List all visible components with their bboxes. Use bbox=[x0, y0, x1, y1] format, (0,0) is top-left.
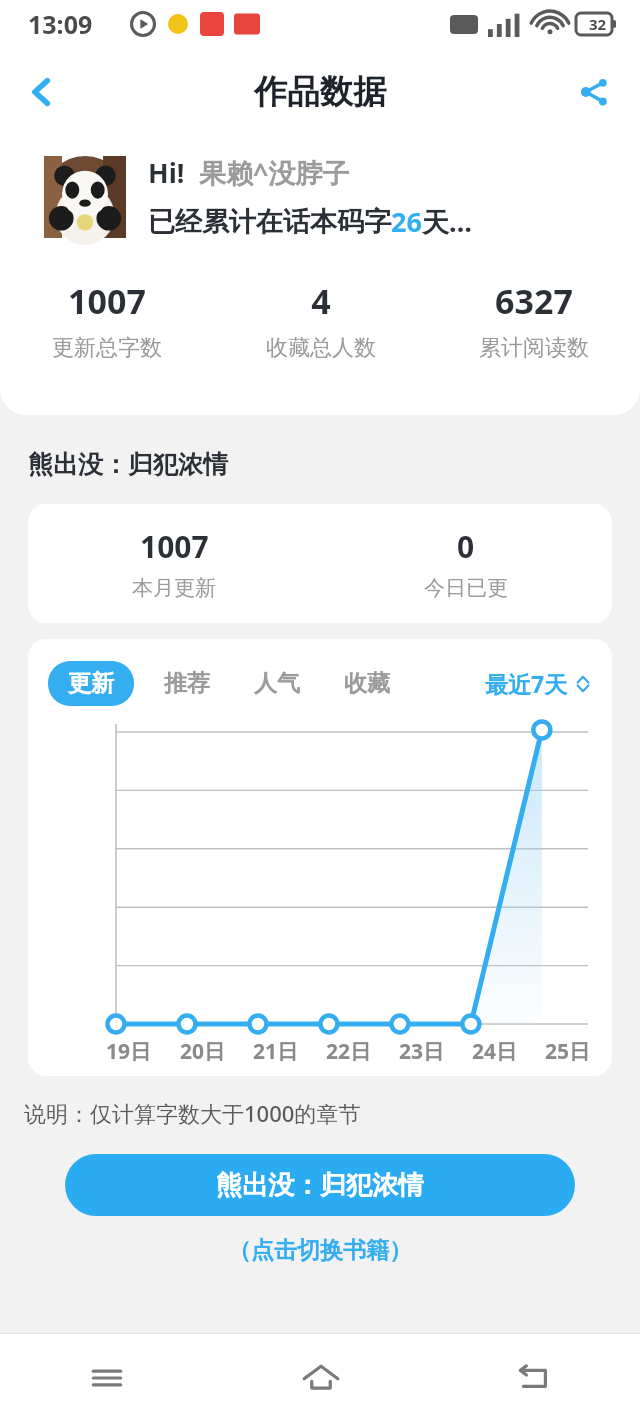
button[interactable]: Back bbox=[427, 1334, 640, 1422]
staticText: 25日 bbox=[545, 1037, 591, 1066]
staticText: 累计阅读数 bbox=[479, 334, 589, 362]
staticText: 1007 bbox=[140, 526, 209, 567]
staticText: 熊出没：归犯浓情 bbox=[216, 1169, 424, 1202]
staticText: 收藏 bbox=[344, 669, 390, 698]
staticText: 收藏总人数 bbox=[266, 334, 376, 362]
staticText: 已经累计在话本码字 bbox=[148, 205, 391, 239]
button[interactable]: 1007 bbox=[28, 504, 612, 623]
button[interactable]: 1007 bbox=[0, 278, 214, 362]
staticText: 13:09 bbox=[28, 7, 93, 41]
button[interactable]: 更新 bbox=[48, 661, 134, 706]
staticText: 19日 bbox=[106, 1037, 152, 1066]
button[interactable]: （点击切换书籍） bbox=[216, 1232, 424, 1269]
staticText: 果赖^没脖子 bbox=[199, 154, 350, 191]
staticText: 4 bbox=[311, 278, 331, 324]
staticText: 21日 bbox=[253, 1037, 299, 1066]
staticText: 最近7天 bbox=[485, 668, 568, 699]
button[interactable]: 4 bbox=[214, 278, 427, 362]
staticText: 更新总字数 bbox=[52, 334, 162, 362]
staticText: 更新 bbox=[68, 669, 114, 698]
button[interactable]: Share bbox=[566, 64, 622, 120]
button[interactable]: 最近7天 bbox=[481, 662, 596, 705]
staticText: 推荐 bbox=[164, 669, 210, 698]
button[interactable]: Back bbox=[14, 64, 70, 120]
staticText: 32 bbox=[589, 14, 607, 34]
staticText: （点击切换书籍） bbox=[228, 1236, 412, 1265]
staticText: 0 bbox=[457, 526, 475, 567]
button[interactable]: 熊出没：归犯浓情 bbox=[65, 1154, 575, 1216]
button[interactable]: 收藏 bbox=[322, 661, 412, 706]
staticText: Hi! bbox=[148, 154, 185, 191]
staticText: 24日 bbox=[472, 1037, 518, 1066]
staticText: 天… bbox=[422, 203, 473, 240]
staticText: 熊出没：归犯浓情 bbox=[28, 449, 228, 480]
staticText: 26 bbox=[391, 203, 422, 240]
staticText: 本月更新 bbox=[132, 575, 216, 601]
button[interactable]: 6327 bbox=[427, 278, 640, 362]
staticText: 人气 bbox=[254, 669, 300, 698]
button[interactable]: 推荐 bbox=[142, 661, 232, 706]
button[interactable]: 人气 bbox=[232, 661, 322, 706]
staticText: 作品数据 bbox=[254, 71, 386, 113]
staticText: 22日 bbox=[326, 1037, 372, 1066]
staticText: 1007 bbox=[68, 278, 146, 324]
staticText: 今日已更 bbox=[424, 575, 508, 601]
staticText: 20日 bbox=[180, 1037, 226, 1066]
staticText: 6327 bbox=[495, 278, 573, 324]
staticText: 23日 bbox=[399, 1037, 445, 1066]
button[interactable]: Recents bbox=[0, 1334, 214, 1422]
button[interactable]: Home bbox=[214, 1334, 427, 1422]
staticText: 说明：仅计算字数大于1000的章节 bbox=[24, 1098, 361, 1128]
